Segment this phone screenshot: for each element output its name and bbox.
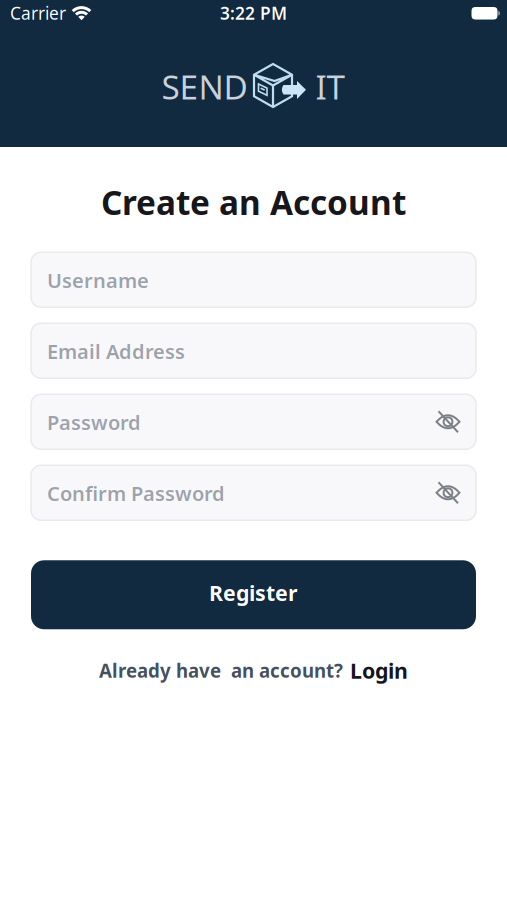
button[interactable]: Login: [350, 656, 408, 685]
staticText: Email Address: [47, 338, 185, 365]
staticText: Username: [47, 267, 149, 294]
button[interactable]: Register: [31, 560, 476, 629]
staticText: Login: [350, 656, 408, 685]
staticText: Register: [209, 579, 298, 607]
staticText: Carrier: [10, 1, 66, 24]
button[interactable]: Show password: [435, 411, 461, 433]
button[interactable]: Username: [31, 252, 476, 307]
staticText: Confirm Password: [47, 480, 225, 507]
staticText: Create an Account: [101, 180, 406, 224]
staticText: SEND: [161, 64, 247, 109]
staticText: Password: [47, 409, 141, 436]
button[interactable]: Email Address: [31, 323, 476, 378]
button[interactable]: Confirm Password: [31, 465, 476, 520]
staticText: IT: [315, 64, 345, 109]
button[interactable]: Show password: [435, 482, 461, 504]
staticText: Already have an account?: [99, 658, 343, 683]
staticText: 3:22 PM: [220, 1, 287, 24]
button[interactable]: Password: [31, 394, 476, 449]
